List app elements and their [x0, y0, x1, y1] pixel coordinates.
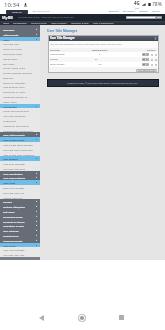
staticText: ▸ [36, 210, 38, 213]
button[interactable]: Order Users [0, 99, 40, 104]
button[interactable]: Rank Link Manager [0, 185, 40, 190]
button[interactable]: Member [48, 57, 159, 62]
staticText: 10:34 [4, 1, 20, 9]
staticText: Ban Users [3, 62, 15, 65]
button[interactable]: ADMIN CP [6, 10, 28, 14]
button[interactable]: Posting Newbie [48, 52, 159, 57]
button[interactable]: User Attachments [0, 132, 40, 137]
button[interactable]: Users & Groups [50, 22, 68, 25]
button[interactable]: User Subscriptions [0, 175, 40, 180]
button[interactable]: Add New User [0, 41, 40, 46]
button[interactable]: Merge Users [0, 56, 40, 61]
button[interactable]: Promotions [0, 118, 40, 123]
staticText: Products & Stocks [3, 220, 25, 223]
staticText: Rank Link Manager [3, 186, 25, 189]
staticText: Order Users [3, 100, 17, 103]
button[interactable]: Options [150, 63, 153, 66]
button[interactable]: Announcements [0, 238, 40, 243]
button[interactable]: Users [0, 37, 40, 41]
button[interactable]: Add New Usergroup [0, 113, 40, 118]
button[interactable]: Validation & Logs [0, 223, 40, 228]
staticText: ▸ [36, 181, 38, 184]
button[interactable]: Search IP Addresses [0, 80, 40, 84]
button[interactable]: Delete title [154, 53, 157, 56]
button[interactable]: Group and Permissions [0, 108, 40, 113]
button[interactable]: Options [150, 58, 153, 61]
button[interactable]: Add New User Profile Field [0, 147, 40, 152]
button[interactable]: Forums & Posts [30, 22, 48, 25]
button[interactable]: Collapse panel [153, 36, 157, 40]
button[interactable]: User Recount Tools [0, 84, 40, 89]
button[interactable]: User Reputation [0, 171, 40, 175]
button[interactable]: Usergroup Permissions [0, 123, 40, 128]
staticText: Welcome [139, 10, 148, 13]
staticText: Usergroups [3, 105, 17, 108]
button[interactable]: Usergroups [0, 104, 40, 108]
button[interactable]: Shopping [0, 27, 40, 32]
button[interactable]: Board Site [108, 10, 120, 13]
button[interactable]: Options [150, 53, 153, 56]
button[interactable]: User Profile Fields [0, 137, 40, 142]
button[interactable]: Edit Tools [0, 209, 40, 214]
button[interactable]: New Internet Page [31, 10, 51, 13]
button[interactable]: Tools & Maintenance [92, 22, 115, 25]
staticText: Merge Users [3, 57, 18, 60]
button[interactable]: Add New User Link [0, 190, 40, 195]
staticText: Powered by MyBB, © 2002-2024 MyBB Group.… [67, 82, 139, 85]
button[interactable]: User Title Manager [0, 247, 40, 252]
button[interactable]: Profiles [0, 199, 40, 204]
button[interactable]: Search [126, 16, 156, 19]
button[interactable]: Administrator Permissions [0, 128, 40, 132]
button[interactable]: Go [156, 16, 162, 19]
button[interactable]: Upload User Icon [0, 195, 40, 199]
button[interactable]: Delete title [154, 58, 157, 61]
button[interactable]: XML Sitemap [0, 228, 40, 233]
button[interactable]: Add New User Rank [0, 166, 40, 171]
button[interactable]: Prune / Inline Users [0, 65, 40, 70]
button[interactable]: Scheduled Tasks [0, 214, 40, 219]
button[interactable]: Recents [107, 305, 135, 330]
staticText: ▸ [36, 224, 38, 227]
button[interactable]: Edit title [142, 58, 149, 61]
button[interactable]: User Models [0, 156, 40, 161]
button[interactable]: User Profile Field Manager [0, 142, 40, 147]
button[interactable]: Senior Member [48, 62, 159, 67]
button[interactable]: Delete title [154, 63, 157, 66]
button[interactable]: User Rank Manager [0, 161, 40, 166]
button[interactable]: Ban Users [0, 61, 40, 65]
button[interactable]: Products & Stocks [0, 219, 40, 223]
button[interactable]: Send Email to Users [0, 89, 40, 94]
button[interactable]: Referrals [0, 75, 40, 80]
staticText: ▸ [36, 28, 38, 31]
button[interactable]: User Profile Field Categories [0, 152, 40, 156]
button[interactable]: Attachments [0, 32, 40, 37]
button[interactable]: Private Message Statistics [0, 70, 40, 75]
button[interactable]: Search For Users [0, 46, 40, 51]
button[interactable]: Configuration [12, 22, 28, 25]
staticText: Posting Newbie [50, 53, 65, 56]
button[interactable]: Maintenance [0, 233, 40, 238]
button[interactable]: User Titles [0, 243, 40, 247]
button[interactable]: Home [68, 305, 96, 330]
button[interactable]: User Stats [0, 180, 40, 185]
button[interactable]: Log Out [151, 10, 161, 13]
button[interactable]: Templates & Style [70, 22, 90, 25]
button[interactable]: Add New User Title [0, 252, 40, 257]
button[interactable]: Add New User Title [136, 69, 157, 72]
button[interactable]: Get Support [122, 10, 136, 13]
staticText: ▸ [36, 105, 38, 108]
button[interactable]: Custom Attributes [0, 204, 40, 209]
button[interactable]: Welcome [138, 10, 149, 13]
staticText: Senior Member [50, 63, 65, 66]
button[interactable]: Edit title [142, 63, 149, 66]
staticText: Prune / Inline Users [3, 66, 26, 69]
staticText: User Attachments [3, 133, 25, 136]
button[interactable]: Back [27, 305, 55, 330]
button[interactable]: Advanced Mailing List [0, 94, 40, 99]
button[interactable]: Edit title [142, 53, 149, 56]
button[interactable]: Home [2, 22, 10, 25]
button[interactable]: Find/Prune Users [0, 51, 40, 56]
staticText: Add New User Profile Field [3, 148, 33, 151]
staticText: User Title [50, 49, 60, 52]
staticText: Attachments [3, 33, 19, 36]
